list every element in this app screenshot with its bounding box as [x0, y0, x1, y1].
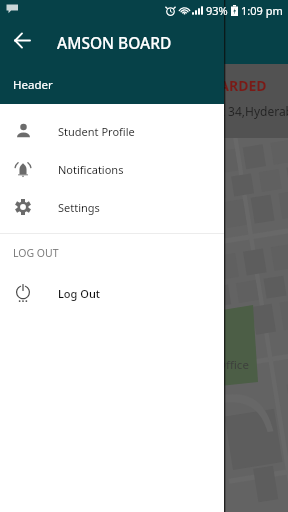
button[interactable]: Notifications: [0, 150, 224, 188]
staticText: LOG OUT: [13, 246, 59, 260]
staticText: 1:09 pm: [241, 3, 283, 18]
staticText: Log Out: [58, 286, 101, 301]
staticText: Plot 34,Hyderabad: [203, 103, 288, 119]
button[interactable]: Log Out: [0, 274, 224, 312]
staticText: Header: [13, 77, 53, 93]
staticText: Notifications: [58, 162, 124, 177]
staticText: Student Profile: [58, 124, 135, 139]
button[interactable]: Back: [3, 22, 40, 59]
staticText: Settings: [58, 200, 100, 215]
staticText: Office: [217, 357, 249, 373]
staticText: TENDER AWARDED: [139, 76, 267, 95]
button[interactable]: Student Profile: [0, 112, 224, 150]
staticText: 93%: [206, 3, 228, 18]
button[interactable]: Settings: [0, 188, 224, 226]
staticText: AMSON BOARD: [57, 32, 172, 53]
